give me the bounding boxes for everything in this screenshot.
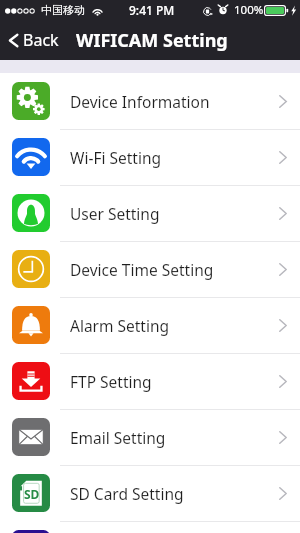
button[interactable]: Email Setting: [0, 409, 300, 465]
button[interactable]: SD: [0, 465, 300, 521]
button[interactable]: Device Information: [0, 73, 300, 129]
staticText: 9:41 PM: [129, 2, 175, 18]
staticText: Wi-Fi Setting: [70, 147, 162, 168]
button[interactable]: Other Setting: [0, 521, 300, 533]
button[interactable]: Device Time Setting: [0, 241, 300, 297]
staticText: Alarm Setting: [70, 315, 170, 336]
staticText: User Setting: [70, 203, 160, 224]
staticText: Email Setting: [70, 427, 166, 448]
staticText: SD Card Setting: [70, 483, 184, 504]
button[interactable]: Wi-Fi Setting: [0, 129, 300, 185]
button[interactable]: User Setting: [0, 185, 300, 241]
staticText: SD: [24, 486, 40, 502]
staticText: 100%: [234, 2, 264, 18]
button[interactable]: FTP Setting: [0, 353, 300, 409]
staticText: Device Time Setting: [70, 259, 214, 280]
staticText: 中国移动: [41, 3, 85, 17]
button[interactable]: Back: [0, 20, 67, 60]
staticText: Back: [23, 29, 59, 51]
button[interactable]: Alarm Setting: [0, 297, 300, 353]
staticText: WIFICAM Setting: [76, 28, 228, 53]
staticText: FTP Setting: [70, 371, 152, 392]
staticText: Device Information: [70, 91, 210, 112]
